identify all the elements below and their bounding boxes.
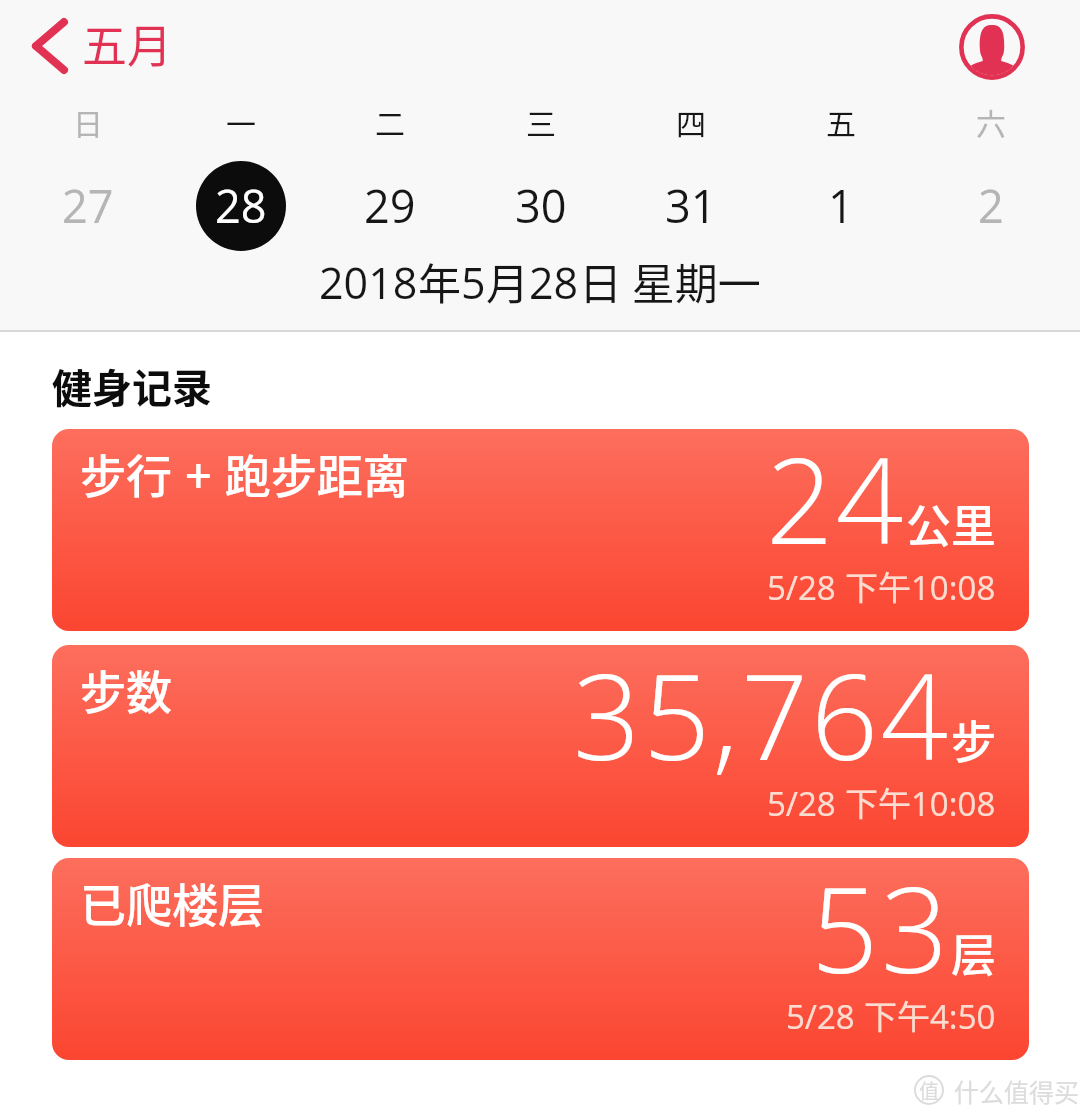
staticText: 5/28 bbox=[767, 565, 836, 610]
staticText: 31 bbox=[665, 175, 717, 236]
staticText: 日 bbox=[73, 100, 103, 143]
staticText: 4:50 bbox=[930, 994, 996, 1039]
staticText: 值 bbox=[919, 1076, 939, 1105]
staticText: 5 bbox=[461, 253, 486, 312]
button[interactable]: 29 bbox=[345, 161, 435, 251]
staticText: 步行 + 跑步距离 bbox=[80, 440, 409, 507]
staticText: 5/28 bbox=[786, 994, 855, 1039]
staticText: 什么值得买 bbox=[954, 1073, 1080, 1109]
staticText: 月 bbox=[486, 250, 529, 312]
staticText: 五 bbox=[826, 100, 856, 143]
staticText: 已爬楼层 bbox=[80, 869, 264, 936]
staticText: 日 星期一 bbox=[579, 250, 761, 312]
button[interactable]: 31 bbox=[646, 161, 736, 251]
staticText: 29 bbox=[364, 175, 416, 236]
staticText: 30 bbox=[515, 175, 567, 236]
button[interactable]: 步行 + 跑步距离 bbox=[52, 429, 1029, 631]
staticText: 二 bbox=[375, 100, 405, 143]
staticText: 五月 bbox=[82, 11, 173, 76]
staticText: 一 bbox=[226, 100, 256, 143]
button[interactable]: 30 bbox=[496, 161, 586, 251]
staticText: 28 bbox=[215, 175, 267, 236]
button[interactable]: Profile bbox=[955, 10, 1029, 84]
staticText: 下午 bbox=[845, 778, 911, 826]
button[interactable]: Back to 五月 bbox=[6, 6, 171, 86]
staticText: 步数 bbox=[80, 656, 172, 723]
staticText: 1 bbox=[828, 175, 854, 236]
staticText: 三 bbox=[526, 100, 556, 143]
button[interactable]: 已爬楼层 bbox=[52, 858, 1029, 1060]
staticText: 步 bbox=[951, 707, 997, 772]
staticText: 10:08 bbox=[911, 781, 996, 826]
button[interactable]: 1 bbox=[796, 161, 886, 251]
staticText: 四 bbox=[676, 100, 706, 143]
staticText: 5/28 bbox=[767, 781, 836, 826]
staticText: 健身记录 bbox=[52, 357, 212, 415]
button[interactable]: 2 bbox=[946, 161, 1036, 251]
staticText: 下午 bbox=[845, 562, 911, 610]
button[interactable]: 28 bbox=[196, 161, 286, 251]
staticText: 35,764 bbox=[573, 645, 951, 795]
staticText: 年 bbox=[418, 250, 461, 312]
staticText: 2 bbox=[978, 175, 1004, 236]
staticText: 10:08 bbox=[911, 565, 996, 610]
staticText: 28 bbox=[529, 253, 579, 312]
button[interactable]: 27 bbox=[43, 161, 133, 251]
staticText: 24 bbox=[766, 429, 906, 579]
staticText: 公里 bbox=[906, 491, 997, 556]
staticText: 层 bbox=[951, 920, 997, 985]
staticText: 2018 bbox=[319, 253, 418, 312]
staticText: 27 bbox=[62, 175, 114, 236]
staticText: 53 bbox=[811, 858, 951, 1008]
staticText: 六 bbox=[976, 100, 1006, 143]
button[interactable]: 步数 bbox=[52, 645, 1029, 847]
staticText: 下午 bbox=[864, 991, 930, 1039]
